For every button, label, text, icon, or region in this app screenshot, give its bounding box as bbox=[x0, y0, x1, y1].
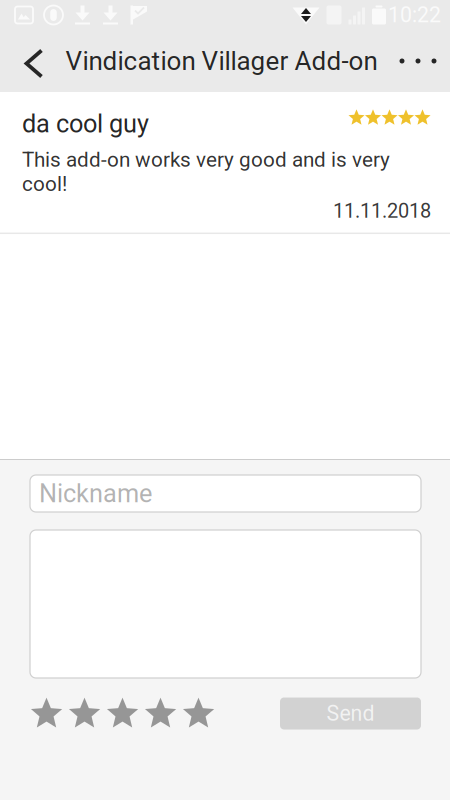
button[interactable]: Rate 3 stars bbox=[106, 697, 139, 730]
button[interactable]: Review text bbox=[30, 530, 421, 678]
staticText: Send bbox=[326, 701, 374, 726]
staticText: Nickname bbox=[39, 479, 152, 508]
button[interactable]: Send bbox=[280, 697, 421, 729]
staticText: 10:22 bbox=[388, 2, 441, 27]
button[interactable]: More options bbox=[377, 30, 450, 92]
button[interactable]: Rate 5 stars bbox=[182, 697, 215, 730]
staticText: This add-on works very good and is very … bbox=[22, 148, 390, 196]
button[interactable]: Nickname bbox=[30, 475, 421, 512]
button[interactable]: Rate 2 stars bbox=[68, 697, 101, 730]
staticText: Vindication Villager Add-on bbox=[65, 46, 377, 76]
staticText: da cool guy bbox=[22, 109, 149, 139]
button[interactable]: Rate 4 stars bbox=[144, 697, 177, 730]
button[interactable]: Back bbox=[0, 30, 65, 92]
staticText: 11.11.2018 bbox=[333, 199, 431, 222]
button[interactable]: Rate 1 star bbox=[30, 697, 63, 730]
